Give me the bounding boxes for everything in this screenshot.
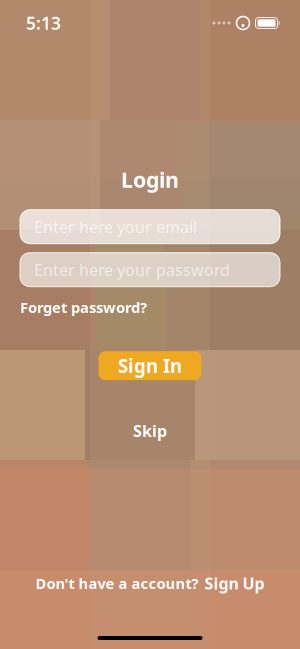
staticText: Sign Up xyxy=(204,573,264,594)
staticText: Forget password? xyxy=(20,298,147,317)
staticText: Sign In xyxy=(118,353,182,378)
staticText: 5:13 xyxy=(26,11,61,34)
button[interactable]: Skip xyxy=(133,420,167,441)
staticText: Login xyxy=(121,165,179,194)
button[interactable]: Forget password? xyxy=(20,298,147,317)
button[interactable]: Enter here your email xyxy=(20,210,280,244)
staticText: Enter here your password xyxy=(34,259,230,280)
staticText: Don't have a account? xyxy=(35,574,198,593)
staticText: Enter here your email xyxy=(34,216,197,237)
button[interactable]: Enter here your password xyxy=(20,253,280,287)
button[interactable]: Sign In xyxy=(98,351,201,380)
staticText: Skip xyxy=(133,420,167,441)
button[interactable]: Sign Up xyxy=(204,573,264,594)
